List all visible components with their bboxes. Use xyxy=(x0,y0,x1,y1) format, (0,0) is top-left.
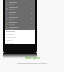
button[interactable] xyxy=(5,11,35,16)
button[interactable] xyxy=(5,6,35,11)
button[interactable] xyxy=(5,16,35,21)
button[interactable]: Now open xyxy=(25,56,40,60)
button[interactable] xyxy=(5,1,35,6)
button[interactable] xyxy=(5,26,35,30)
staticText: multiple windows at once xyxy=(17,61,47,64)
button[interactable] xyxy=(5,21,35,26)
